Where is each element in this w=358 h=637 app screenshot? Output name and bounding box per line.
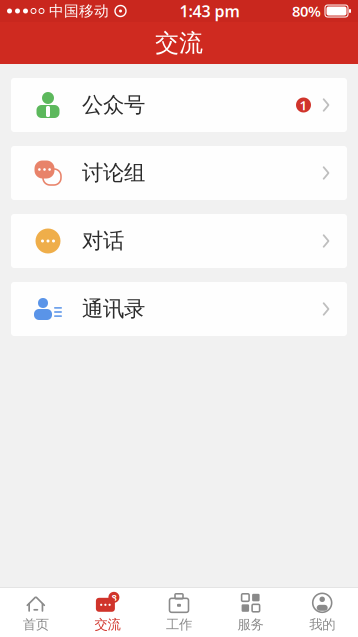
button[interactable]: 讨论组 (11, 146, 347, 200)
staticText: 讨论组 (82, 160, 145, 186)
staticText: 8 (111, 591, 116, 603)
staticText: 80% (292, 1, 321, 21)
staticText: 通讯录 (82, 296, 145, 322)
staticText: 公众号 (82, 92, 145, 118)
button[interactable]: 服务 (215, 588, 286, 637)
staticText: 服务 (238, 616, 264, 633)
button[interactable]: 8 (72, 588, 143, 637)
button[interactable]: 首页 (0, 588, 72, 637)
button[interactable]: 对话 (11, 214, 347, 268)
staticText: 工作 (166, 616, 192, 633)
button[interactable]: 我的 (286, 588, 358, 637)
staticText: 1:43 pm (179, 0, 239, 22)
staticText: 首页 (23, 616, 49, 633)
staticText: 我的 (309, 616, 335, 633)
staticText: 对话 (82, 228, 124, 254)
staticText: 交流 (155, 28, 203, 58)
staticText: 1 (299, 96, 307, 114)
button[interactable]: 公众号 (11, 78, 347, 132)
staticText: 交流 (94, 616, 120, 633)
staticText: 中国移动 (49, 2, 109, 20)
button[interactable]: 工作 (143, 588, 215, 637)
button[interactable]: 通讯录 (11, 282, 347, 336)
